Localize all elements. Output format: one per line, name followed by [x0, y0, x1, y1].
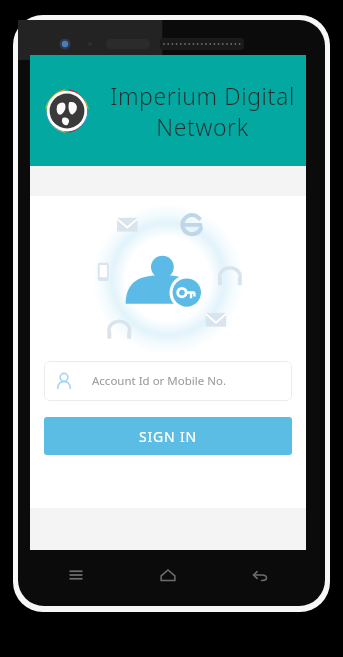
staticText: Imperium Digital: [110, 80, 295, 111]
button[interactable]: Back: [214, 552, 306, 598]
staticText: SIGN IN: [139, 427, 197, 446]
staticText: Account Id or Mobile No.: [92, 373, 227, 389]
button[interactable]: Account Id or Mobile No.: [44, 361, 292, 401]
button[interactable]: Menu: [30, 552, 122, 598]
staticText: Network: [156, 111, 249, 142]
button[interactable]: SIGN IN: [44, 417, 292, 455]
button[interactable]: Home: [122, 552, 214, 598]
